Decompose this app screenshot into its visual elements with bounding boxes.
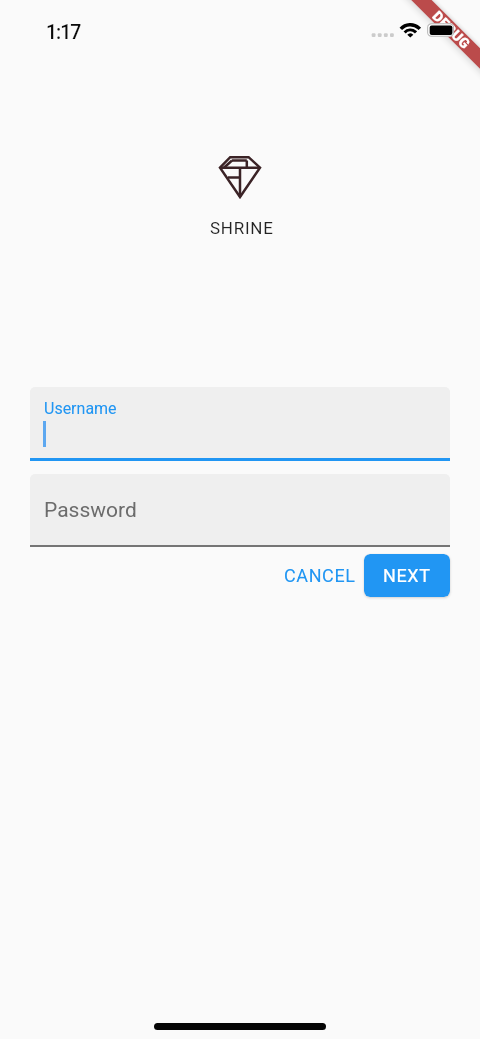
staticText: SHRINE	[210, 218, 274, 238]
staticText: 1:17	[46, 21, 81, 44]
staticText: Password	[44, 498, 137, 523]
button[interactable]: NEXT	[364, 554, 450, 597]
staticText: CANCEL	[284, 565, 356, 586]
button[interactable]: Username	[30, 387, 450, 461]
other: Signal strength	[370, 30, 395, 39]
staticText: NEXT	[383, 565, 431, 586]
button[interactable]: CANCEL	[275, 554, 364, 597]
staticText: Username	[44, 399, 117, 418]
button[interactable]: Password	[30, 474, 450, 547]
